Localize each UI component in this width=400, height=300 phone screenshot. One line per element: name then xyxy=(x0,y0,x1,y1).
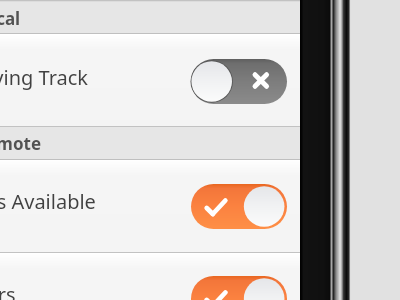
button[interactable]: Speakers xyxy=(0,253,300,300)
staticText: Devices Available xyxy=(0,188,96,215)
staticText: Now Playing Track xyxy=(0,64,88,91)
button[interactable]: Enabled, toggle off xyxy=(191,276,287,300)
staticText: Remote xyxy=(0,132,42,155)
staticText: Local xyxy=(0,7,21,30)
staticText: Speakers xyxy=(0,281,16,300)
button[interactable]: Devices Available xyxy=(0,160,300,253)
button[interactable]: Enabled, toggle off xyxy=(191,184,287,229)
button[interactable]: Disabled, toggle on xyxy=(191,59,287,104)
button[interactable]: Remote xyxy=(0,127,300,160)
button[interactable]: Local xyxy=(0,0,300,34)
button[interactable]: Now Playing Track xyxy=(0,34,300,127)
